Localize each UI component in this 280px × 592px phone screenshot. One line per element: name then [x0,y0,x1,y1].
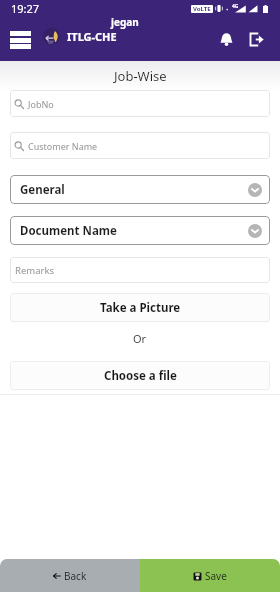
button[interactable]: Customer Name [10,132,270,159]
button[interactable]: Logout [244,27,268,51]
button[interactable]: Choose a file [10,361,270,390]
staticText: Remarks [15,264,55,277]
staticText: Save [205,569,227,583]
staticText: VoLTE [193,5,211,13]
button[interactable]: Menu [10,31,31,49]
staticText: jegan [111,15,139,29]
staticText: Take a Picture [100,300,181,316]
button[interactable]: Notifications [214,27,238,51]
button[interactable]: Back [0,559,140,592]
button[interactable]: General [10,175,270,204]
staticText: 4G [232,3,239,10]
staticText: ITLG-CHE [67,29,117,44]
button[interactable]: Remarks [10,257,270,283]
staticText: General [20,182,65,198]
staticText: Back [64,569,87,583]
staticText: JobNo [28,98,54,110]
button[interactable]: Take a Picture [10,293,270,322]
staticText: Choose a file [104,368,177,384]
staticText: Document Name [20,223,117,239]
staticText: Or [133,331,147,346]
staticText: 19:27 [11,1,40,16]
button[interactable]: Save [140,559,280,592]
button[interactable]: Document Name [10,216,270,245]
staticText: Job-Wise [114,67,167,85]
button[interactable]: JobNo [10,90,270,117]
staticText: Customer Name [28,140,98,152]
